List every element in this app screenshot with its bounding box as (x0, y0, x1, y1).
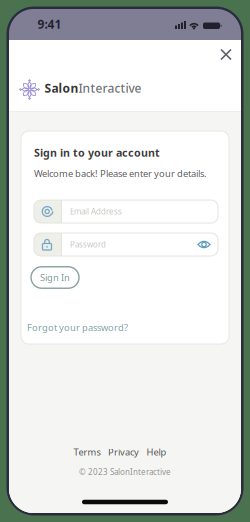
staticText: 9:41 (37, 16, 61, 32)
button[interactable]: Help (146, 446, 166, 458)
staticText: Welcome back! Please enter your details. (34, 167, 207, 180)
staticText: © 2023 SalonInteractive (79, 467, 171, 477)
button[interactable]: Forgot your password? (27, 321, 128, 334)
staticText: Interactive (78, 80, 141, 96)
staticText: Sign in to your account (34, 145, 160, 160)
staticText: Sign In (40, 271, 70, 284)
button[interactable]: Show password (194, 233, 214, 256)
staticText: Email Address (70, 206, 122, 217)
staticText: Help (146, 446, 166, 458)
button[interactable]: Sign In (31, 267, 79, 288)
staticText: Salon (44, 80, 78, 96)
button[interactable]: Close (218, 46, 234, 62)
staticText: Password (70, 239, 106, 250)
button[interactable]: Privacy (108, 446, 139, 458)
button[interactable]: Terms (73, 446, 100, 458)
staticText: Terms (73, 446, 100, 458)
staticText: Forgot your password? (27, 321, 128, 334)
staticText: Privacy (108, 446, 139, 458)
